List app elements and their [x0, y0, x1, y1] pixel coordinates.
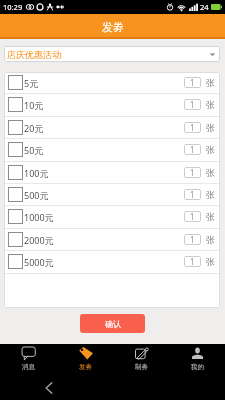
staticText: 张 [206, 256, 215, 267]
staticText: 10:29 [3, 2, 23, 12]
button[interactable]: Select 100元 [4, 162, 220, 183]
staticText: 50元 [24, 144, 44, 156]
staticText: 张 [206, 122, 215, 133]
staticText: 1 [190, 167, 195, 178]
staticText: 5000元 [24, 256, 54, 268]
staticText: 张 [206, 77, 215, 88]
button[interactable]: Select 10元 [8, 97, 23, 112]
button[interactable]: 制劵 [113, 344, 169, 378]
button[interactable]: Select 50元 [4, 139, 220, 160]
staticText: 24 [200, 2, 209, 12]
button[interactable]: Back [38, 377, 59, 398]
staticText: 10元 [24, 99, 44, 111]
button[interactable]: 确认 [80, 314, 145, 333]
staticText: 1 [190, 122, 195, 133]
staticText: 500元 [24, 189, 49, 201]
button[interactable]: 店庆优惠活动 [4, 46, 220, 62]
button[interactable]: Select 1000元 [4, 206, 220, 227]
button[interactable]: Select 50元 [8, 142, 23, 157]
staticText: 1 [190, 99, 195, 110]
button[interactable]: Select 100元 [8, 165, 23, 180]
button[interactable]: Select 5000元 [4, 251, 220, 272]
button[interactable]: Select 20元 [4, 117, 220, 138]
staticText: 1 [190, 77, 195, 88]
staticText: 100元 [24, 167, 49, 179]
staticText: 张 [206, 234, 215, 245]
staticText: 张 [206, 144, 215, 155]
button[interactable]: Select 500元 [4, 184, 220, 205]
staticText: 制劵 [135, 363, 148, 371]
button[interactable]: 消息 [0, 344, 57, 378]
staticText: 确认 [105, 319, 121, 329]
staticText: 1 [190, 189, 195, 200]
staticText: 1 [190, 256, 195, 267]
staticText: 2000元 [24, 234, 54, 246]
staticText: 张 [206, 99, 215, 110]
staticText: 发劵 [102, 20, 124, 34]
staticText: 20元 [24, 122, 44, 134]
button[interactable]: Select 2000元 [8, 232, 23, 247]
staticText: 1 [190, 144, 195, 155]
button[interactable]: Select 500元 [8, 187, 23, 202]
button[interactable]: Select 20元 [8, 120, 23, 135]
button[interactable]: Select 5元 [8, 75, 23, 90]
staticText: 发劵 [79, 363, 92, 371]
button[interactable]: Select 2000元 [4, 229, 220, 250]
staticText: 5元 [24, 77, 39, 89]
staticText: 张 [206, 189, 215, 200]
button[interactable]: Select 1000元 [8, 209, 23, 224]
button[interactable]: Select 5元 [4, 72, 220, 93]
button[interactable]: 我的 [169, 344, 225, 378]
staticText: 消息 [22, 363, 35, 371]
staticText: 1 [190, 234, 195, 245]
button[interactable]: Select 5000元 [8, 254, 23, 269]
staticText: 1 [190, 211, 195, 222]
staticText: 店庆优惠活动 [7, 49, 61, 60]
button[interactable]: Select 10元 [4, 94, 220, 115]
staticText: 张 [206, 167, 215, 178]
staticText: 我的 [191, 363, 204, 371]
staticText: 1000元 [24, 211, 54, 223]
button[interactable]: 发劵 [57, 344, 113, 378]
staticText: 张 [206, 211, 215, 222]
